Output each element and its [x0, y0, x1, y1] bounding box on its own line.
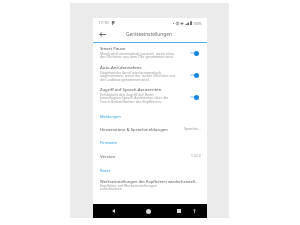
staticText: Auto-Anrufannahme	[100, 64, 142, 70]
staticText: Firmware	[100, 140, 118, 145]
staticText: Musik wird automatisch pausiert, wenn ei…	[100, 51, 188, 59]
staticText: Geräteeinstellungen	[126, 31, 172, 38]
staticText: Reset	[100, 168, 111, 173]
staticText: Meldungen	[100, 114, 121, 119]
button[interactable]: Back	[107, 204, 119, 218]
button[interactable]: Back	[96, 29, 109, 40]
button[interactable]: Hinweistöne & Sprachmeldungen	[93, 123, 207, 134]
button[interactable]: Zugriff auf Sprach-Assistenten	[93, 85, 207, 108]
button[interactable]: Version	[93, 150, 207, 161]
staticText: Hinweistöne & Sprachmeldungen	[100, 126, 184, 132]
staticText: 1.22.0	[191, 153, 201, 158]
button[interactable]: Hide keyboard	[188, 204, 200, 218]
staticText: 17:10	[98, 20, 109, 26]
button[interactable]: Auto-Anrufannahme	[93, 63, 207, 85]
staticText: 100%	[193, 21, 202, 25]
staticText: Zugriff auf Sprach-Assistenten	[100, 86, 162, 92]
button[interactable]: Werkseinstellungen des Kopfhörers wieder…	[93, 177, 207, 193]
staticText: Sprachm...	[184, 126, 201, 131]
staticText: Kopfhörer auf Werkseinstellungen zurücks…	[100, 183, 157, 191]
staticText: Ermöglicht den Zugriff auf Ihren bevorzu…	[100, 92, 188, 104]
staticText: Smart Pause	[100, 45, 126, 51]
staticText: Eingehender Anruf wird automatisch angen…	[100, 70, 188, 82]
staticText: Werkseinstellungen des Kopfhörers wieder…	[100, 179, 204, 184]
staticText: Version	[100, 153, 191, 159]
button[interactable]: Recent apps	[173, 204, 185, 218]
button[interactable]: Home	[142, 204, 154, 218]
button[interactable]: Smart Pause	[93, 44, 207, 64]
